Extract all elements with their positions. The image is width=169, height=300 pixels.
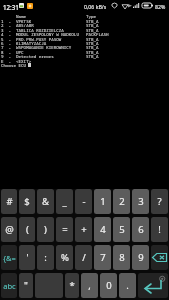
- staticText: 5: [119, 223, 125, 236]
- button[interactable]: 3: [132, 189, 149, 214]
- button[interactable]: abc: [1, 273, 17, 298]
- staticText: STB_A: [86, 28, 99, 34]
- staticText: !: [158, 223, 161, 236]
- button[interactable]: &: [37, 189, 54, 214]
- button[interactable]: (: [19, 217, 35, 242]
- staticText: Type: [86, 14, 97, 20]
- button[interactable]: =: [56, 217, 73, 242]
- button[interactable]: _: [56, 189, 73, 214]
- button[interactable]: [35, 273, 63, 298]
- staticText: E - <EXIT>: [1, 59, 32, 65]
- staticText: 3: [138, 195, 144, 208]
- staticText: Choose ECU :: [1, 63, 32, 69]
- staticText: =: [62, 223, 68, 236]
- button[interactable]: @: [1, 217, 17, 242]
- staticText: *: [69, 279, 75, 292]
- staticText: &: [42, 195, 49, 208]
- button[interactable]: +: [75, 217, 92, 242]
- button[interactable]: -: [75, 189, 92, 214]
- button[interactable]: 0: [100, 273, 117, 298]
- button[interactable]: /: [75, 245, 92, 270]
- button[interactable]: ?: [151, 189, 168, 214]
- staticText: STB_A: [86, 37, 99, 43]
- staticText: 6: [138, 223, 144, 236]
- button[interactable]: 9: [132, 245, 149, 270]
- staticText: STB_A: [86, 45, 99, 51]
- button[interactable]: ,: [81, 273, 98, 298]
- staticText: 4 - MODUL ZESPOLONY W NADKOLU: [1, 32, 79, 38]
- staticText: 1 - VPKTSK: [1, 19, 32, 25]
- staticText: #: [6, 195, 13, 208]
- button[interactable]: 6: [132, 217, 149, 242]
- staticText: ?: [157, 195, 162, 208]
- staticText: 1: [100, 195, 106, 208]
- staticText: ,: [88, 279, 91, 292]
- staticText: 2: [119, 195, 125, 208]
- staticText: abc: [3, 281, 16, 291]
- button[interactable]: 4: [94, 217, 111, 242]
- staticText: STB_A: [86, 23, 99, 29]
- staticText: -: [82, 195, 86, 208]
- button[interactable]: Enter: [138, 273, 168, 298]
- staticText: 7 - WSPOMAGANIE KIEROWNICY: [1, 45, 72, 51]
- button[interactable]: #: [1, 189, 17, 214]
- staticText: 12:31: [3, 3, 19, 11]
- button[interactable]: 5: [113, 217, 130, 242]
- staticText: ': [26, 251, 29, 264]
- staticText: (: [26, 223, 29, 236]
- staticText: 2 - ABS/ABR: [1, 23, 34, 29]
- staticText: PACKFLASH: [86, 32, 109, 38]
- button[interactable]: 7: [94, 245, 111, 270]
- button[interactable]: 2: [113, 189, 130, 214]
- staticText: {&=: [3, 253, 16, 263]
- staticText: 6 - KLIMATYZACJA: [1, 41, 47, 47]
- button[interactable]: 1: [94, 189, 111, 214]
- staticText: 9 - Detected errors: [1, 54, 54, 60]
- staticText: STB_A: [86, 41, 99, 47]
- staticText: ": [24, 279, 28, 292]
- staticText: STB_A: [86, 54, 99, 60]
- button[interactable]: Backspace: [151, 245, 168, 270]
- staticText: :: [44, 251, 47, 264]
- staticText: +: [81, 223, 87, 236]
- staticText: /: [82, 251, 86, 264]
- staticText: @: [5, 223, 14, 236]
- staticText: Name: [1, 14, 27, 20]
- staticText: %: [61, 251, 69, 264]
- button[interactable]: 8: [113, 245, 130, 270]
- button[interactable]: ': [19, 245, 35, 270]
- staticText: 5 - PRD.PRW.PASY PASOW: [1, 37, 62, 43]
- button[interactable]: %: [56, 245, 73, 270]
- staticText: 9: [138, 251, 144, 264]
- button[interactable]: ): [37, 217, 54, 242]
- button[interactable]: *: [65, 273, 79, 298]
- staticText: 3 - TABLICA ROZDZIELCZA: [1, 28, 64, 34]
- button[interactable]: :: [37, 245, 54, 270]
- staticText: 0: [106, 279, 112, 292]
- staticText: _: [62, 195, 67, 208]
- staticText: 7: [100, 251, 106, 264]
- button[interactable]: ": [19, 273, 33, 298]
- staticText: 8: [119, 251, 125, 264]
- staticText: .: [126, 279, 129, 292]
- staticText: STB_A: [86, 50, 99, 56]
- button[interactable]: $: [19, 189, 35, 214]
- button[interactable]: {&=: [1, 245, 17, 270]
- staticText: $: [24, 195, 30, 208]
- button[interactable]: .: [119, 273, 136, 298]
- staticText: 8 - UPC: [1, 50, 24, 56]
- staticText: 4: [100, 223, 106, 236]
- button[interactable]: !: [151, 217, 168, 242]
- staticText: 0,06 kB/s: [84, 3, 107, 10]
- staticText: ): [44, 223, 47, 236]
- staticText: 82%: [155, 3, 166, 10]
- staticText: STB_A: [86, 19, 99, 25]
